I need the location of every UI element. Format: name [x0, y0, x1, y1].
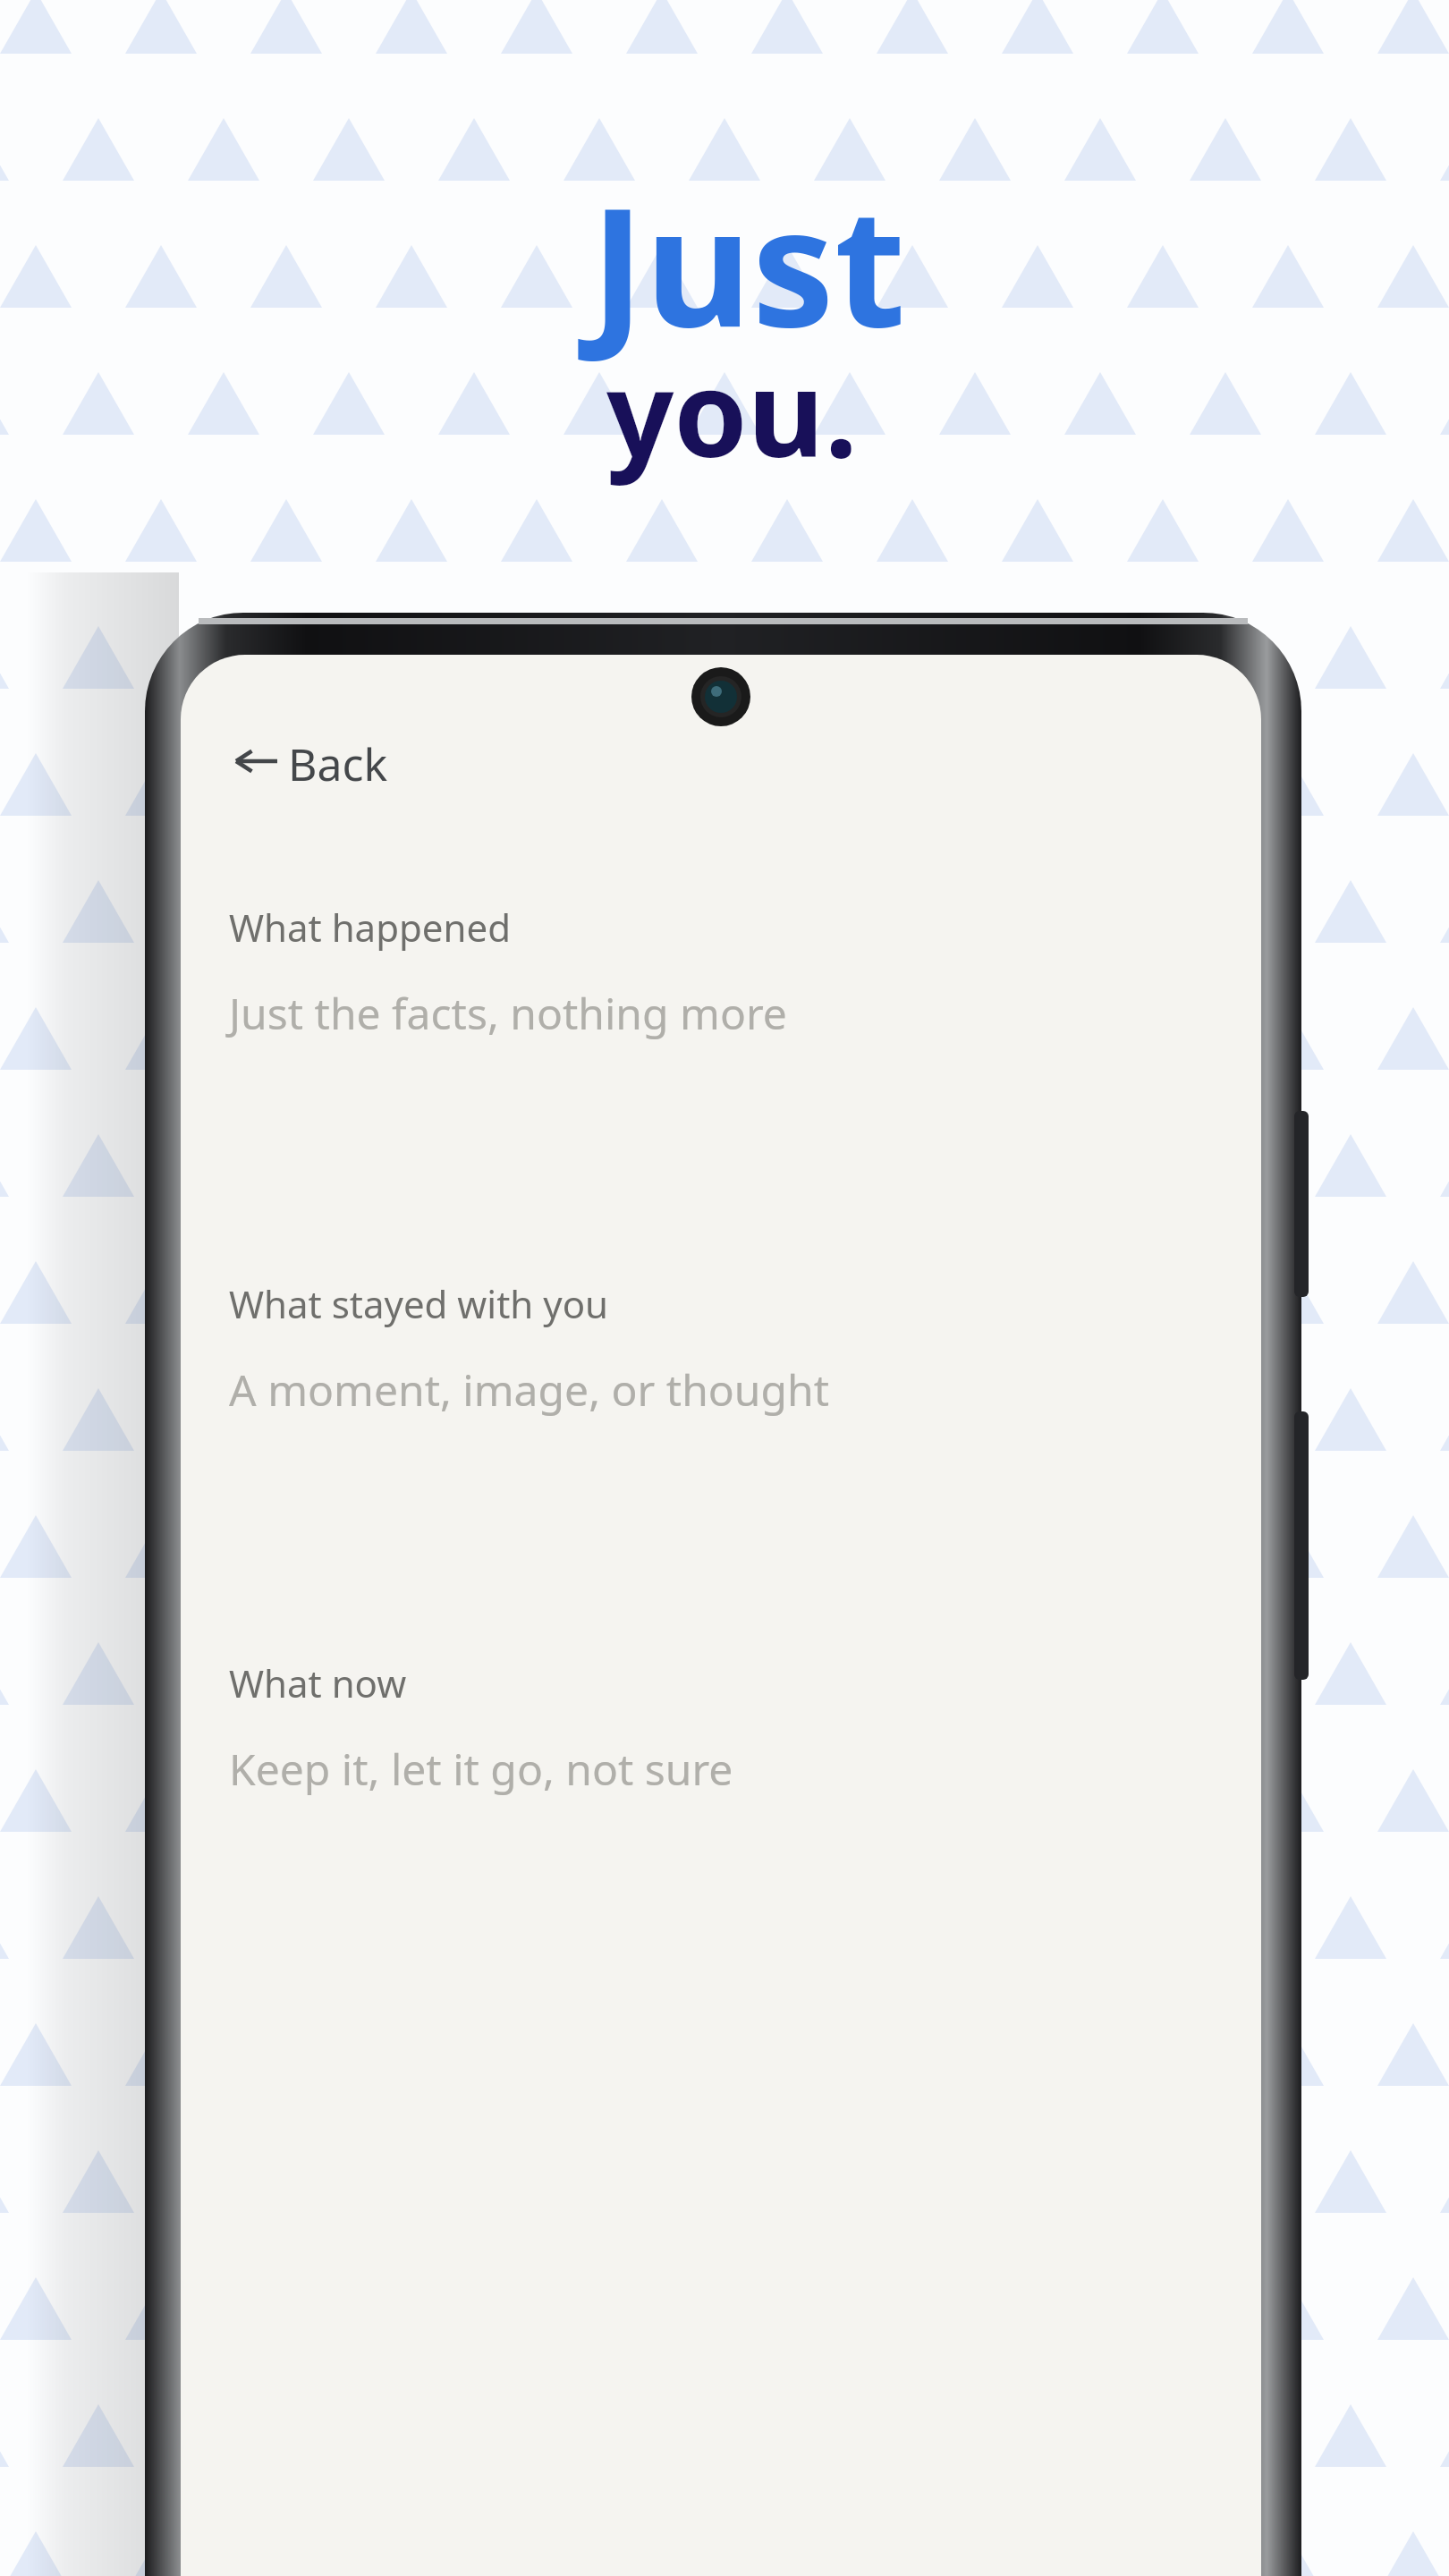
staticText: Keep it, let it go, not sure [229, 1740, 733, 1798]
staticText: Just [590, 150, 906, 375]
button[interactable]: What stayed with you [229, 1278, 1231, 1475]
staticText: What now [229, 1657, 407, 1708]
button[interactable]: Back [225, 721, 530, 798]
staticText: Back [288, 733, 388, 794]
staticText: you. [606, 331, 858, 492]
button[interactable]: What happened [229, 902, 1231, 1098]
staticText: Just the facts, nothing more [229, 984, 787, 1042]
staticText: A moment, image, or thought [229, 1360, 830, 1419]
staticText: What stayed with you [229, 1278, 609, 1329]
staticText: What happened [229, 902, 512, 953]
button[interactable]: What now [229, 1657, 1231, 1854]
